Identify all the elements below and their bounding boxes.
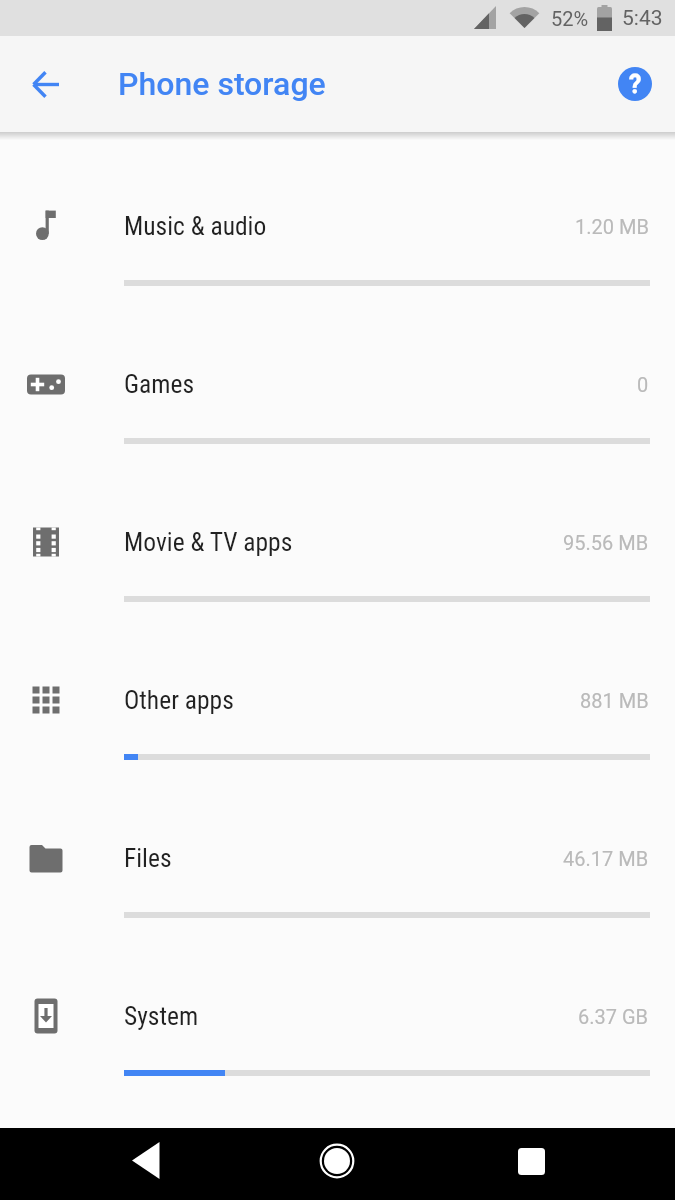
staticText: Phone storage xyxy=(118,65,326,103)
staticText: 5:43 xyxy=(622,6,663,31)
button[interactable] xyxy=(28,66,64,102)
button[interactable] xyxy=(122,1137,170,1185)
button[interactable]: ? xyxy=(618,67,652,101)
button[interactable]: Music & audio xyxy=(0,147,675,305)
staticText: 95.56 MB xyxy=(563,531,649,554)
staticText: Games xyxy=(124,369,195,399)
staticText: Music & audio xyxy=(124,211,267,241)
staticText: ? xyxy=(629,70,642,99)
staticText: Files xyxy=(124,843,172,873)
staticText: 52% xyxy=(551,7,589,30)
staticText: 46.17 MB xyxy=(563,847,649,870)
button[interactable]: System xyxy=(0,937,675,1095)
staticText: 881 MB xyxy=(580,689,649,712)
button[interactable]: Files xyxy=(0,779,675,937)
button[interactable] xyxy=(507,1137,555,1185)
staticText: Other apps xyxy=(124,685,234,715)
staticText: 0 xyxy=(637,373,649,396)
button[interactable] xyxy=(313,1137,361,1185)
button[interactable]: Movie & TV apps xyxy=(0,463,675,621)
button[interactable]: Other apps xyxy=(0,621,675,779)
staticText: 6.37 GB xyxy=(578,1005,649,1028)
button[interactable]: Games xyxy=(0,305,675,463)
staticText: System xyxy=(124,1001,199,1031)
staticText: 1.20 MB xyxy=(575,215,649,238)
staticText: Movie & TV apps xyxy=(124,527,293,557)
